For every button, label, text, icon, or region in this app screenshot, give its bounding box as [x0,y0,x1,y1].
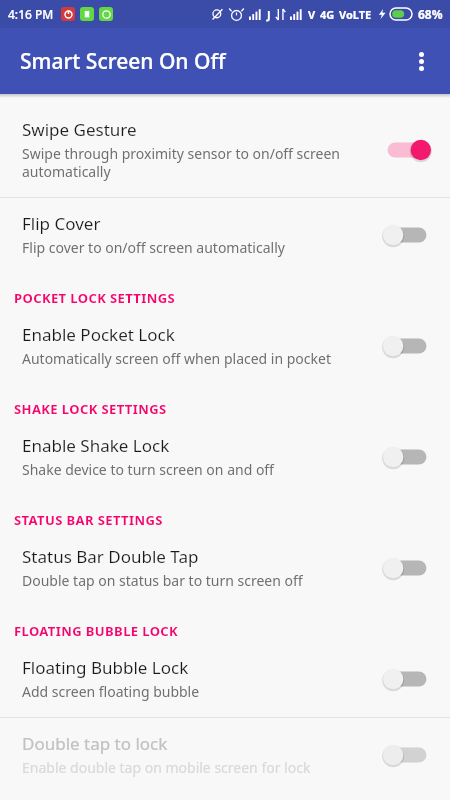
staticText: 68% [418,6,443,22]
staticText: Automatically screen off when placed in … [22,349,331,368]
staticText: STATUS BAR SETTINGS [14,511,163,529]
staticText: Double tap on status bar to turn screen … [22,571,303,590]
staticText: Swipe Gesture [22,118,137,141]
button[interactable]: Off [380,218,434,252]
button[interactable]: Off [380,662,434,696]
button[interactable]: Floating Bubble Lock [0,642,450,717]
staticText: POCKET LOCK SETTINGS [14,289,176,307]
button[interactable]: Off [380,329,434,363]
staticText: Smart Screen On Off [20,47,226,76]
button[interactable]: Enable Pocket Lock [0,309,450,384]
staticText: Floating Bubble Lock [22,656,189,679]
button[interactable]: More options [398,38,444,84]
button[interactable]: Double tap to lock [0,718,450,793]
button[interactable]: Enable Shake Lock [0,420,450,495]
staticText: 4G [320,7,335,22]
button[interactable]: Status Bar Double Tap [0,531,450,606]
staticText: Add screen floating bubble [22,682,200,701]
staticText: Enable double tap on mobile screen for l… [22,758,311,777]
button[interactable]: Flip Cover [0,198,450,273]
button[interactable]: Swipe Gesture [0,104,450,197]
button[interactable]: Off [380,440,434,474]
button[interactable]: Off [380,738,434,772]
staticText: Double tap to lock [22,732,168,755]
staticText: SHAKE LOCK SETTINGS [14,400,167,418]
staticText: FLOATING BUBBLE LOCK [14,622,179,640]
staticText: Swipe through proximity sensor to on/off… [22,144,368,181]
staticText: Flip Cover [22,212,101,235]
staticText: VoLTE [339,7,372,22]
staticText: Enable Shake Lock [22,434,170,457]
staticText: Enable Pocket Lock [22,323,175,346]
staticText: Status Bar Double Tap [22,545,199,568]
button[interactable]: Off [380,551,434,585]
staticText: J [267,7,271,22]
staticText: V [308,7,316,22]
staticText: 4:16 PM [8,6,54,22]
staticText: Shake device to turn screen on and off [22,460,274,479]
button[interactable]: On [380,133,434,167]
staticText: Flip cover to on/off screen automaticall… [22,238,285,257]
